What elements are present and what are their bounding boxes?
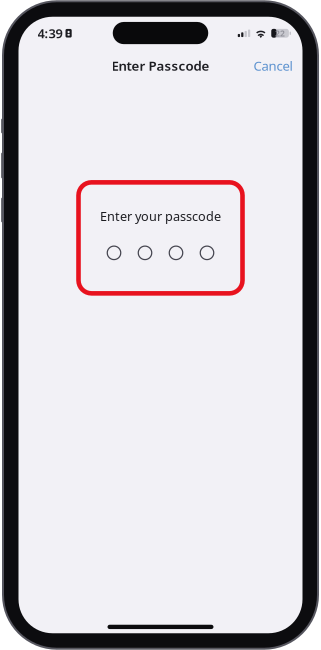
- staticText: Enter your passcode: [100, 207, 221, 225]
- button[interactable]: Cancel: [243, 50, 302, 82]
- staticText: 22: [275, 27, 285, 39]
- staticText: 4:39: [37, 24, 62, 42]
- staticText: Cancel: [253, 57, 292, 75]
- staticText: Enter Passcode: [111, 57, 209, 75]
